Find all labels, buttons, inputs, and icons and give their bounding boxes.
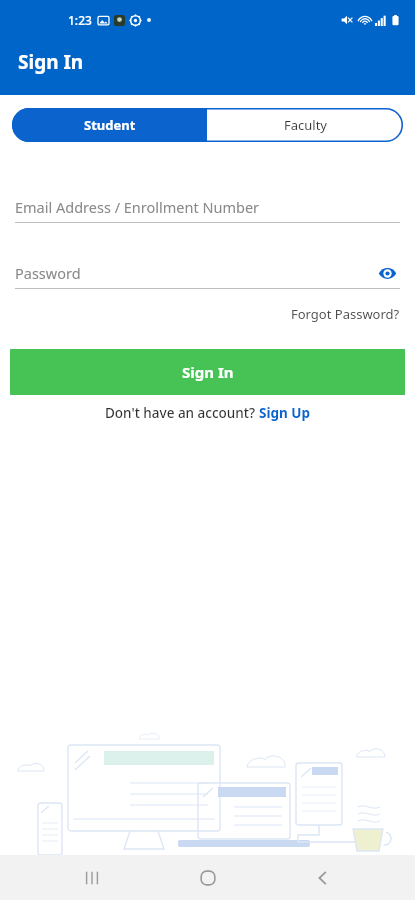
staticText: Password (15, 263, 81, 283)
button[interactable]: Faculty (207, 108, 403, 142)
staticText: Student (84, 116, 136, 134)
staticText: Don't have an account? (105, 404, 259, 422)
staticText: Faculty (284, 116, 327, 134)
button[interactable]: Sign In (10, 349, 405, 395)
button[interactable]: Forgot Password? (291, 305, 400, 323)
staticText: Forgot Password? (291, 305, 400, 323)
staticText: Email Address / Enrollment Number (15, 197, 260, 217)
staticText: Sign Up (259, 404, 311, 422)
button[interactable]: Recent apps (68, 855, 116, 900)
staticText: Sign In (18, 49, 84, 75)
button[interactable]: Student (12, 108, 207, 142)
button[interactable]: Sign Up (259, 404, 311, 422)
staticText: Sign In (182, 362, 234, 382)
button[interactable]: Password (15, 260, 400, 286)
button[interactable]: Back (299, 855, 347, 900)
button[interactable]: Home (184, 855, 232, 900)
button[interactable]: Show password (374, 260, 400, 286)
staticText: 1:23 (68, 12, 92, 28)
button[interactable]: Email Address / Enrollment Number (15, 194, 400, 220)
